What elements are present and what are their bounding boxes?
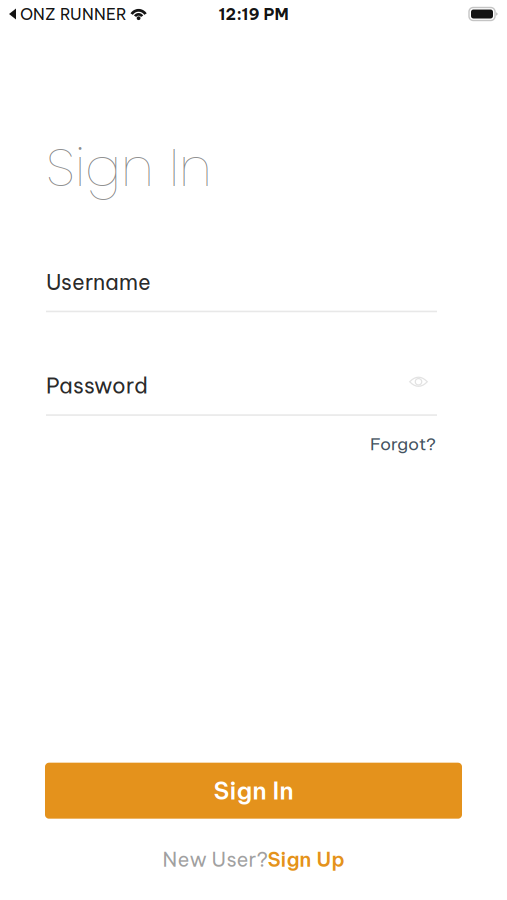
- staticText: ONZ RUNNER: [20, 4, 127, 24]
- button[interactable]: New User?: [162, 847, 344, 872]
- button[interactable]: Forgot?: [370, 433, 436, 455]
- staticText: Sign Up: [267, 847, 344, 872]
- staticText: 12:19 PM: [218, 4, 288, 24]
- staticText: Password: [46, 372, 148, 399]
- staticText: Sign In: [46, 130, 212, 205]
- staticText: New User?: [162, 847, 267, 872]
- staticText: Sign In: [213, 775, 293, 806]
- staticText: Forgot?: [370, 433, 436, 455]
- staticText: Username: [46, 269, 151, 296]
- button[interactable]: Sign In: [45, 763, 462, 819]
